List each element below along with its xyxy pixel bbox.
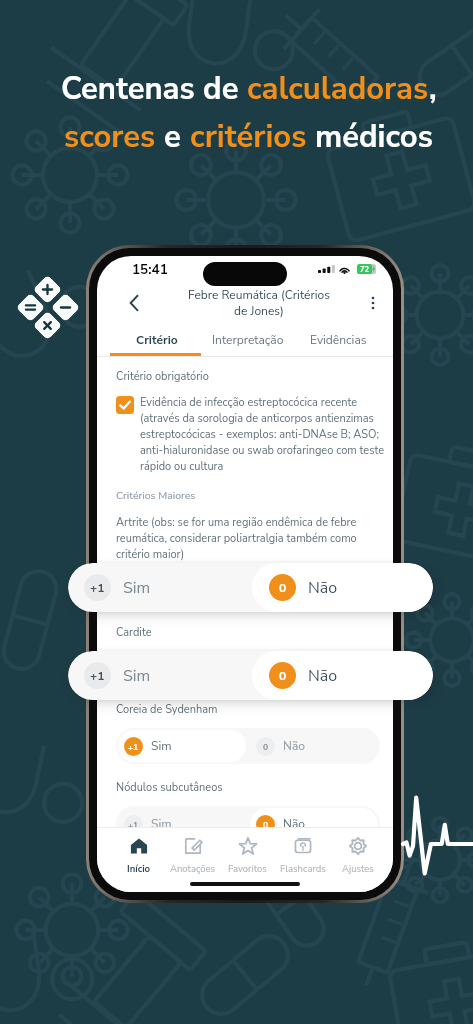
staticText: 0: [263, 741, 269, 753]
staticText: +1: [128, 741, 139, 753]
staticText: calculadoras: [247, 68, 429, 110]
button[interactable]: Calculadoras: [15, 275, 81, 341]
staticText: Não: [283, 581, 305, 597]
button[interactable]: Ajustes: [330, 837, 385, 892]
button[interactable]: Critério: [110, 322, 203, 358]
staticText: +1: [90, 580, 105, 596]
staticText: Centenas de: [61, 68, 247, 110]
staticText: Cardite: [116, 625, 152, 640]
button[interactable]: Interpretação: [203, 322, 293, 358]
button[interactable]: 0: [250, 653, 378, 685]
staticText: e: [164, 116, 190, 158]
button[interactable]: Anotações: [166, 837, 220, 892]
button[interactable]: Critério obrigatório marcado: [116, 396, 134, 414]
staticText: 15:41: [132, 260, 168, 278]
staticText: Não: [283, 661, 305, 677]
staticText: Sim: [123, 577, 151, 599]
button[interactable]: +1: [118, 653, 246, 685]
button[interactable]: Flashcards: [275, 837, 330, 892]
staticText: ,: [429, 68, 437, 110]
staticText: Início: [127, 862, 151, 875]
button[interactable]: 0: [250, 730, 378, 762]
staticText: Critério obrigatório: [116, 369, 209, 384]
button[interactable]: Favoritos: [220, 837, 275, 892]
staticText: Não: [283, 738, 305, 754]
button[interactable]: Voltar: [97, 284, 165, 321]
button[interactable]: Mais opções: [353, 284, 393, 321]
staticText: Favoritos: [228, 862, 267, 875]
button[interactable]: +1: [118, 808, 246, 840]
staticText: Sim: [151, 738, 172, 754]
staticText: 72: [360, 264, 370, 274]
staticText: Sim: [123, 665, 151, 687]
staticText: Interpretação: [212, 332, 284, 348]
staticText: +1: [90, 668, 105, 684]
staticText: médicos: [315, 116, 433, 158]
button[interactable]: Início: [112, 837, 166, 892]
button[interactable]: +1: [68, 563, 252, 612]
button[interactable]: 0: [252, 563, 433, 612]
button[interactable]: +1: [118, 730, 246, 762]
staticText: +1: [128, 584, 139, 596]
staticText: Não: [308, 577, 338, 599]
staticText: Sim: [151, 816, 172, 832]
button[interactable]: +1: [68, 651, 252, 700]
staticText: 0: [279, 580, 287, 596]
staticText: Artrite (obs: se for uma região endêmica…: [116, 515, 387, 562]
button[interactable]: 0: [252, 651, 433, 700]
button[interactable]: 0: [250, 808, 378, 840]
staticText: Evidências: [310, 332, 367, 348]
staticText: Não: [283, 816, 305, 832]
staticText: Flashcards: [280, 862, 326, 875]
staticText: Febre Reumática (Critérios de Jones): [187, 287, 331, 319]
staticText: Anotações: [170, 862, 216, 875]
staticText: 0: [279, 668, 287, 684]
staticText: Critérios Maiores: [116, 488, 196, 502]
staticText: scores: [64, 116, 164, 158]
staticText: Nódulos subcutâneos: [116, 780, 223, 795]
staticText: +1: [128, 819, 139, 831]
staticText: Não: [308, 665, 338, 687]
staticText: Critério: [136, 332, 178, 348]
staticText: +1: [128, 664, 139, 676]
staticText: Ajustes: [342, 862, 374, 875]
staticText: Coreia de Sydenham: [116, 702, 218, 717]
button[interactable]: +1: [118, 573, 246, 605]
button[interactable]: Evidências: [293, 322, 383, 358]
staticText: Evidência de infecção estreptocócica rec…: [140, 395, 387, 474]
staticText: critérios: [190, 116, 315, 158]
button[interactable]: 0: [250, 573, 378, 605]
staticText: 0: [263, 819, 269, 831]
